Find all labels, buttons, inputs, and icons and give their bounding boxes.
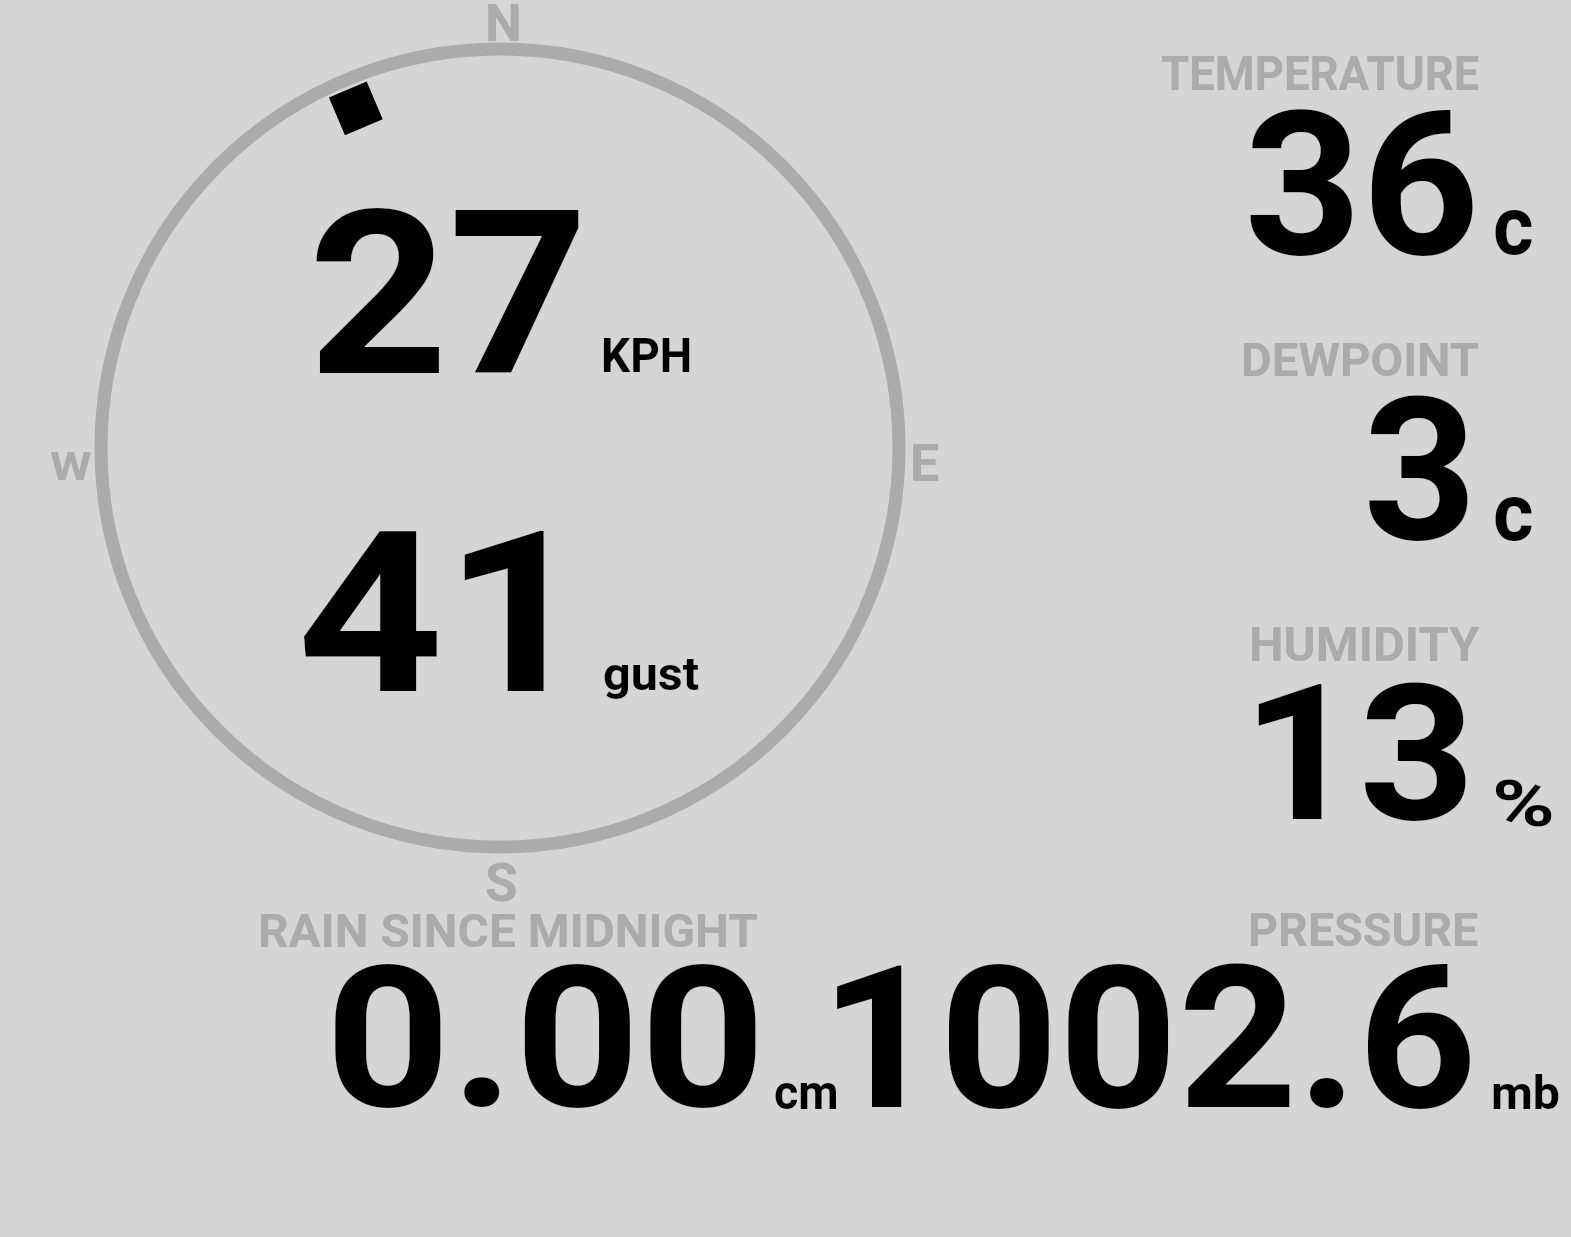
button[interactable]: Dewpoint 3 degrees Celsius: [1140, 330, 1560, 560]
staticText: 13: [1242, 643, 1476, 866]
staticText: W: [50, 444, 93, 490]
staticText: E: [910, 433, 940, 494]
staticText: TEMPERATURE: [1161, 45, 1479, 101]
staticText: N: [485, 0, 522, 54]
staticText: 36: [1244, 68, 1480, 304]
staticText: mb: [1491, 1066, 1560, 1120]
staticText: 41: [297, 482, 591, 746]
staticText: DEWPOINT: [1241, 333, 1480, 387]
staticText: %: [1492, 767, 1556, 842]
staticText: gust: [603, 646, 700, 701]
button[interactable]: Temperature 36 degrees Celsius: [1140, 40, 1560, 270]
button[interactable]: Rain since midnight 0.00 cm: [230, 900, 850, 1130]
staticText: c: [1493, 179, 1534, 274]
staticText: RAIN SINCE MIDNIGHT: [258, 904, 758, 958]
staticText: KPH: [601, 327, 693, 384]
staticText: 27: [308, 161, 589, 428]
button[interactable]: Humidity 13 percent: [1140, 615, 1560, 845]
staticText: 1002.6: [820, 922, 1477, 1155]
staticText: HUMIDITY: [1249, 616, 1479, 672]
staticText: 3: [1363, 354, 1478, 587]
staticText: S: [485, 852, 518, 914]
button[interactable]: Wind compass, 27 KPH gusting 41: [90, 38, 910, 858]
staticText: 0.00: [325, 923, 766, 1154]
button[interactable]: Pressure 1002.6 mb: [850, 900, 1565, 1130]
staticText: cm: [774, 1064, 839, 1120]
staticText: PRESSURE: [1248, 903, 1478, 957]
staticText: c: [1493, 466, 1534, 560]
